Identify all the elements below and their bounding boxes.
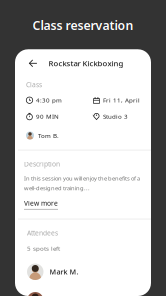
- staticText: Class reservation: [32, 17, 133, 33]
- staticText: Attendees: [27, 228, 58, 237]
- staticText: Rockstar Kickboxing: [48, 58, 123, 68]
- staticText: View more: [24, 199, 58, 208]
- button[interactable]: View more: [24, 199, 58, 210]
- staticText: 5 spots left: [27, 244, 60, 252]
- staticText: Class: [26, 80, 42, 89]
- staticText: Fri 11, April: [103, 96, 140, 104]
- staticText: Studio 3: [103, 112, 128, 120]
- staticText: In this session you will enjoy the benef…: [24, 174, 140, 192]
- staticText: Tom B.: [38, 131, 59, 139]
- staticText: Mark M.: [49, 267, 78, 277]
- staticText: 90 MIN: [36, 112, 59, 120]
- button[interactable]: Mark M.: [27, 259, 145, 284]
- button[interactable]: Alice P.: [27, 288, 145, 296]
- button[interactable]: Back: [26, 56, 40, 70]
- staticText: Description: [24, 160, 60, 168]
- staticText: 4:30 pm: [36, 96, 62, 104]
